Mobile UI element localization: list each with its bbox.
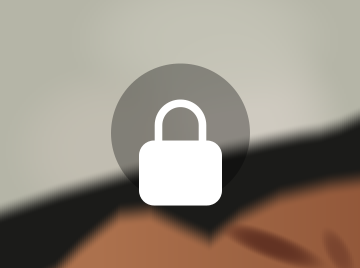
button[interactable]: Content locked <box>111 63 250 202</box>
